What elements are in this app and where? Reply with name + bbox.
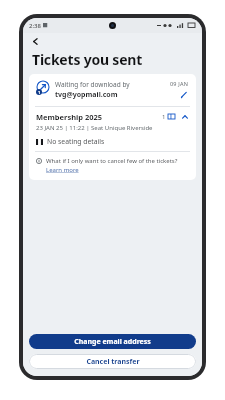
- staticText: Membership 2025: [36, 112, 103, 122]
- button[interactable]: Back: [28, 34, 42, 48]
- staticText: No seating details: [47, 137, 105, 146]
- button[interactable]: Edit email address: [179, 90, 189, 100]
- staticText: Cancel transfer: [86, 357, 140, 367]
- staticText: Learn more: [46, 166, 79, 174]
- staticText: Waiting for download by: [55, 80, 130, 89]
- button[interactable]: Membership 2025: [29, 107, 196, 151]
- button[interactable]: Cancel transfer: [29, 354, 196, 369]
- staticText: Change email address: [74, 337, 151, 347]
- button[interactable]: 1: [29, 74, 196, 106]
- staticText: What if I only want to cancel few of the…: [46, 157, 178, 165]
- staticText: 1: [162, 113, 166, 121]
- button[interactable]: What if I only want to cancel few of the…: [29, 152, 196, 180]
- staticText: 1: [38, 90, 41, 95]
- staticText: 2:38: [29, 22, 41, 30]
- button[interactable]: Collapse: [180, 112, 189, 121]
- staticText: Tickets you sent: [32, 50, 143, 69]
- staticText: tvg@yopmail.com: [55, 90, 118, 100]
- staticText: 23 JAN 25 | 11:22 | Seat Unique Riversid…: [36, 124, 153, 132]
- button[interactable]: Change email address: [29, 334, 196, 349]
- staticText: 09 JAN: [170, 80, 189, 87]
